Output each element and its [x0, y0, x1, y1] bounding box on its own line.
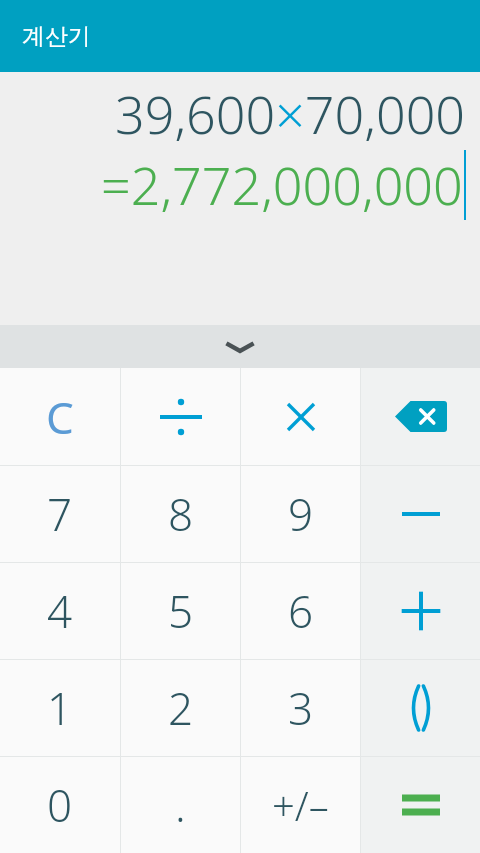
button[interactable]: +/– [241, 757, 360, 853]
staticText: =2,772,000,000 [101, 149, 463, 220]
button[interactable]: 6 [241, 563, 360, 659]
staticText: 3 [288, 678, 314, 738]
staticText: 4 [47, 581, 73, 641]
button[interactable] [121, 368, 240, 465]
staticText: 0 [47, 775, 73, 835]
button[interactable]: . [121, 757, 240, 853]
button[interactable]: 4 [0, 563, 120, 659]
button[interactable] [361, 660, 480, 756]
staticText: 9 [288, 484, 314, 544]
button[interactable]: 3 [241, 660, 360, 756]
button[interactable]: Collapse keypad [0, 325, 480, 368]
staticText: 8 [168, 484, 194, 544]
button[interactable]: 5 [121, 563, 240, 659]
button[interactable] [241, 368, 360, 465]
staticText: 7 [47, 484, 73, 544]
staticText: +/– [272, 778, 329, 832]
button[interactable]: 8 [121, 466, 240, 562]
staticText: C [46, 387, 74, 447]
button[interactable]: 2 [121, 660, 240, 756]
button[interactable]: Equals [361, 757, 480, 853]
staticText: 39,600×70,000 [115, 78, 466, 149]
button[interactable]: Backspace [361, 368, 480, 465]
staticText: 5 [168, 581, 194, 641]
staticText: 6 [288, 581, 314, 641]
staticText: 1 [47, 678, 73, 738]
staticText: 계산기 [22, 22, 91, 51]
button[interactable]: 9 [241, 466, 360, 562]
button[interactable]: C [0, 368, 120, 465]
button[interactable]: 7 [0, 466, 120, 562]
button[interactable]: Minus [361, 466, 480, 562]
staticText: 2 [168, 678, 194, 738]
button[interactable]: 0 [0, 757, 120, 853]
button[interactable]: 1 [0, 660, 120, 756]
button[interactable]: Plus [361, 563, 480, 659]
staticText: . [175, 775, 186, 835]
